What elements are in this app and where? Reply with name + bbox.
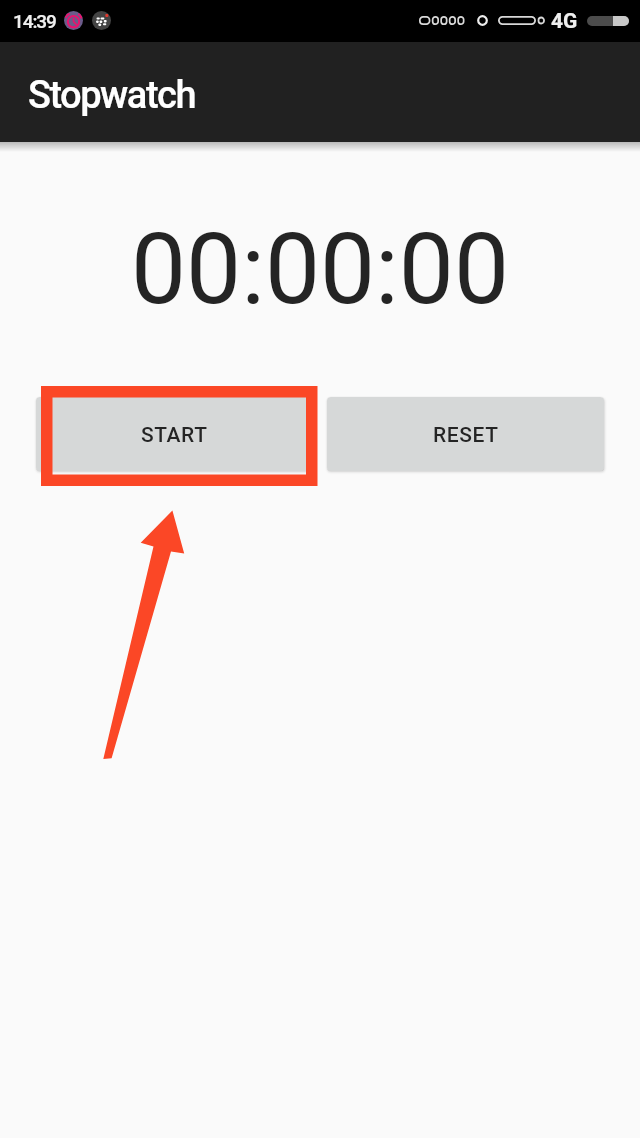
staticText: Stopwatch xyxy=(28,73,196,118)
other: Notification xyxy=(92,11,111,30)
button[interactable]: RESET xyxy=(327,397,604,471)
staticText: 14:39 xyxy=(13,10,56,32)
other: Alarm xyxy=(64,11,83,30)
button[interactable]: START xyxy=(36,397,313,471)
staticText: START xyxy=(141,423,208,448)
staticText: 00:00:00 xyxy=(0,212,640,327)
staticText: RESET xyxy=(433,423,499,448)
staticText: 4G xyxy=(551,9,578,34)
